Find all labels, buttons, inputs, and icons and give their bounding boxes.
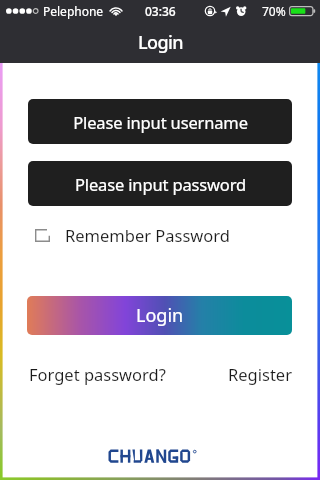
button[interactable]: Remember Password <box>35 224 230 246</box>
staticText: Pelephone <box>43 3 104 19</box>
other: Rotation lock <box>205 5 217 17</box>
button[interactable]: Forget password? <box>29 363 166 385</box>
other: Wi-Fi <box>109 5 123 17</box>
button[interactable]: Please input username <box>28 99 292 144</box>
staticText: Please input password <box>75 173 246 195</box>
other: Alarm <box>236 5 247 17</box>
staticText: 70% <box>262 3 286 19</box>
button[interactable]: Register <box>228 363 292 385</box>
staticText: Login <box>138 30 183 55</box>
staticText: Please input username <box>73 111 248 133</box>
staticText: 03:36 <box>145 3 176 19</box>
other: Battery 70 percent <box>289 5 317 17</box>
staticText: Login <box>136 303 184 328</box>
button[interactable]: Login <box>27 296 292 335</box>
button[interactable]: Please input password <box>28 161 292 206</box>
staticText: Remember Password <box>65 224 230 246</box>
